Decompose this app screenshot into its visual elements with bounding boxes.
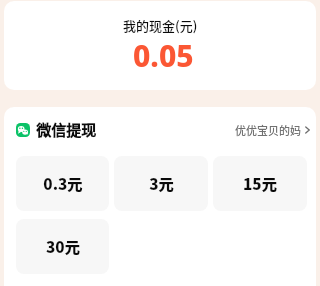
button[interactable]: 优优宝贝的妈 (235, 122, 310, 138)
staticText: 0.05 (133, 35, 194, 76)
staticText: 30元 (46, 235, 80, 257)
staticText: 微信提现 (36, 119, 97, 141)
button[interactable]: 30元 (16, 219, 109, 274)
staticText: 15元 (243, 172, 277, 194)
staticText: 我的现金(元) (123, 16, 198, 35)
other: WeChat (16, 123, 30, 137)
button[interactable]: 3元 (114, 156, 208, 211)
button[interactable]: 15元 (213, 156, 307, 211)
staticText: 3元 (149, 172, 174, 194)
button[interactable]: 0.3元 (16, 156, 109, 211)
staticText: 优优宝贝的妈 (235, 122, 301, 138)
staticText: 0.3元 (43, 172, 83, 194)
